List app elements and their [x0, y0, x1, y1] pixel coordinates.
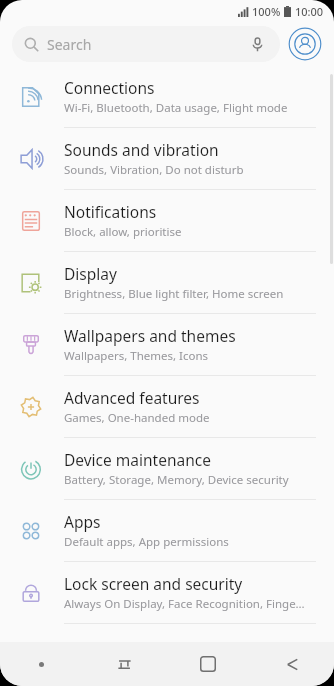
staticText: 100%	[252, 4, 281, 19]
staticText: Battery, Storage, Memory, Device securit…	[64, 472, 289, 488]
staticText: Wi-Fi, Bluetooth, Data usage, Flight mod…	[64, 100, 288, 116]
button[interactable]: Menu dot	[0, 642, 83, 686]
button[interactable]: Recents	[83, 642, 166, 686]
button[interactable]: Home	[166, 642, 250, 686]
button[interactable]: Search	[12, 26, 280, 62]
button[interactable]: Back	[250, 642, 334, 686]
staticText: Block, allow, prioritise	[64, 224, 182, 240]
staticText: Wallpapers, Themes, Icons	[64, 348, 209, 364]
staticText: Sounds, Vibration, Do not disturb	[64, 162, 244, 178]
staticText: Brightness, Blue light filter, Home scre…	[64, 286, 284, 302]
button[interactable]: Display	[0, 252, 334, 313]
staticText: Connections	[64, 77, 155, 98]
staticText: Games, One-handed mode	[64, 410, 210, 426]
button[interactable]: Lock screen and security	[0, 562, 334, 623]
button[interactable]: Apps	[0, 500, 334, 561]
button[interactable]: Account	[288, 27, 322, 61]
staticText: Always On Display, Face Recognition, Fin…	[64, 596, 305, 612]
button[interactable]: Connections	[0, 66, 334, 127]
staticText: Lock screen and security	[64, 573, 243, 594]
staticText: Device maintenance	[64, 449, 211, 470]
staticText: Sounds and vibration	[64, 139, 219, 160]
staticText: Advanced features	[64, 387, 200, 408]
staticText: Wallpapers and themes	[64, 325, 236, 346]
button[interactable]: Notifications	[0, 190, 334, 251]
staticText: Display	[64, 263, 117, 284]
staticText: Apps	[64, 511, 101, 532]
button[interactable]: Sounds and vibration	[0, 128, 334, 189]
button[interactable]: Wallpapers and themes	[0, 314, 334, 375]
button[interactable]: Device maintenance	[0, 438, 334, 499]
button[interactable]: Voice search	[246, 33, 268, 55]
staticText: Default apps, App permissions	[64, 534, 229, 550]
staticText: Search	[47, 35, 92, 54]
staticText: Notifications	[64, 201, 157, 222]
button[interactable]: Advanced features	[0, 376, 334, 437]
staticText: 10:00	[295, 4, 324, 19]
